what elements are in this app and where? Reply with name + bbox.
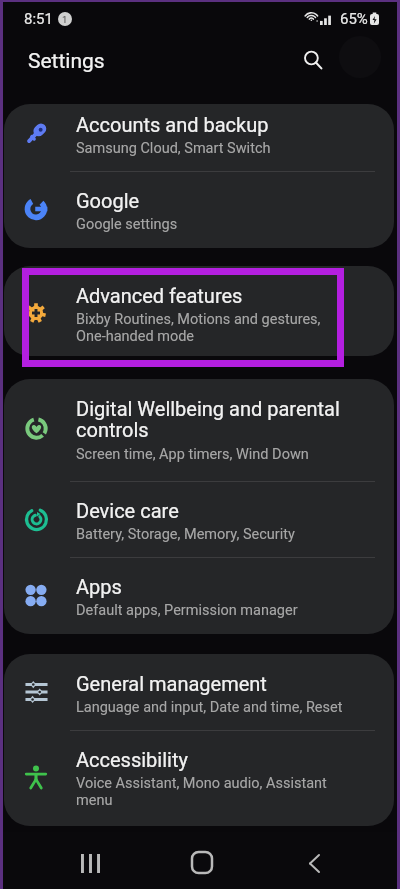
staticText: Samsung Cloud, Smart Switch xyxy=(76,140,271,157)
staticText: General management xyxy=(76,672,267,695)
button[interactable]: Search xyxy=(291,38,335,82)
button[interactable]: Accounts and backup xyxy=(4,104,394,180)
staticText: Screen time, App timers, Wind Down xyxy=(76,446,309,463)
button[interactable]: Home xyxy=(176,836,228,888)
staticText: Google xyxy=(76,189,140,212)
staticText: Default apps, Permission manager xyxy=(76,602,298,619)
button[interactable]: Digital Wellbeing and parental controls xyxy=(4,379,394,486)
staticText: 8:51 xyxy=(24,10,53,28)
staticText: Battery, Storage, Memory, Security xyxy=(76,526,295,543)
staticText: Settings xyxy=(28,49,105,74)
button[interactable]: Device care xyxy=(4,481,394,566)
staticText: Device care xyxy=(76,499,179,522)
button[interactable]: Apps xyxy=(4,557,394,634)
staticText: Language and input, Date and time, Reset xyxy=(76,699,343,716)
button[interactable]: Recent apps xyxy=(64,837,116,889)
staticText: 65% xyxy=(340,10,368,28)
staticText: Accounts and backup xyxy=(76,113,269,136)
button[interactable]: Google xyxy=(4,171,394,248)
staticText: Advanced features xyxy=(76,284,243,307)
button[interactable]: General management xyxy=(4,654,394,739)
staticText: Accessibility xyxy=(76,748,188,771)
button[interactable]: Advanced features xyxy=(4,266,394,356)
staticText: Google settings xyxy=(76,216,178,233)
button[interactable]: Back xyxy=(288,837,340,889)
staticText: Apps xyxy=(76,575,122,598)
staticText: menu xyxy=(76,792,113,809)
staticText: 1 xyxy=(62,14,68,25)
button[interactable]: Accessibility xyxy=(4,730,394,826)
staticText: Digital Wellbeing and parental controls xyxy=(76,397,340,442)
staticText: Voice Assistant, Mono audio, Assistant xyxy=(76,775,327,792)
staticText: Bixby Routines, Motions and gestures, xyxy=(76,311,321,328)
staticText: One-handed mode xyxy=(76,328,195,345)
